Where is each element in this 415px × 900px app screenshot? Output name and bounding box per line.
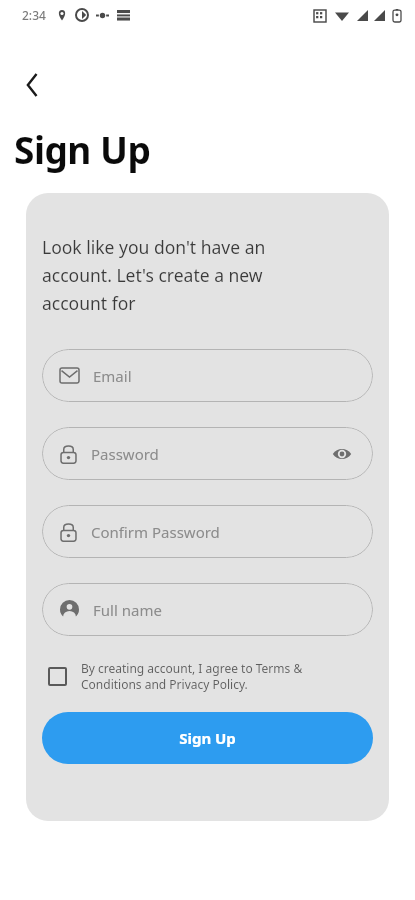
staticText: Confirm Password: [91, 522, 220, 542]
staticText: Password: [91, 444, 159, 464]
button[interactable]: Show password: [329, 441, 355, 467]
button[interactable]: Back: [16, 68, 50, 102]
button[interactable]: Sign Up: [42, 712, 373, 764]
button[interactable]: Confirm Password: [42, 505, 373, 558]
button[interactable]: By creating account, I agree to Terms & …: [42, 658, 373, 695]
button[interactable]: Full name: [42, 583, 373, 636]
staticText: Sign Up: [14, 124, 151, 174]
staticText: Email: [93, 366, 132, 386]
staticText: Full name: [93, 600, 162, 620]
staticText: 2:34: [22, 7, 46, 23]
staticText: Sign Up: [179, 728, 236, 748]
staticText: Look like you don't have an account. Let…: [42, 235, 266, 315]
staticText: By creating account, I agree to Terms & …: [81, 660, 303, 693]
button[interactable]: Email: [42, 349, 373, 402]
button[interactable]: Password: [42, 427, 373, 480]
